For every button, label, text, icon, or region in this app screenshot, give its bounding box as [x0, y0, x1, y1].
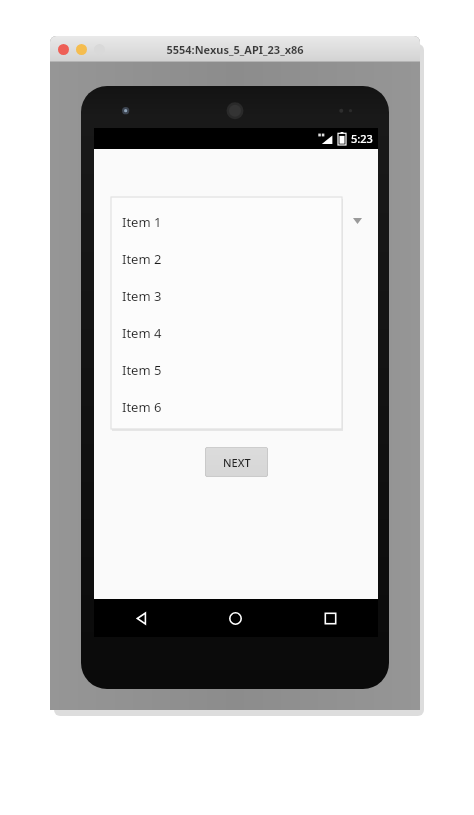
- button[interactable]: Item 5: [111, 351, 342, 388]
- button[interactable]: Recent apps: [283, 599, 378, 637]
- staticText: NEXT: [223, 455, 251, 470]
- staticText: 5:23: [351, 131, 373, 146]
- button[interactable]: Item 4: [111, 314, 342, 351]
- button[interactable]: Item 2: [111, 240, 342, 277]
- staticText: Category:: [111, 193, 164, 209]
- button[interactable]: Item 1: [111, 203, 342, 240]
- staticText: 5554:Nexus_5_API_23_x86: [166, 42, 304, 57]
- staticText: Item 4: [122, 324, 162, 342]
- button[interactable]: Item 6: [111, 388, 342, 425]
- button[interactable]: Open category dropdown: [344, 211, 370, 231]
- staticText: Item 5: [122, 361, 162, 379]
- button[interactable]: Item 3: [111, 277, 342, 314]
- staticText: Item 3: [122, 287, 162, 305]
- button[interactable]: NEXT: [205, 447, 268, 477]
- button[interactable]: Home: [188, 599, 283, 637]
- button[interactable]: Back: [94, 599, 188, 637]
- button[interactable]: Close: [58, 44, 69, 55]
- staticText: Item 2: [122, 250, 162, 268]
- button[interactable]: Minimise: [76, 44, 87, 55]
- staticText: Item 6: [122, 398, 162, 416]
- staticText: Item 1: [122, 213, 162, 231]
